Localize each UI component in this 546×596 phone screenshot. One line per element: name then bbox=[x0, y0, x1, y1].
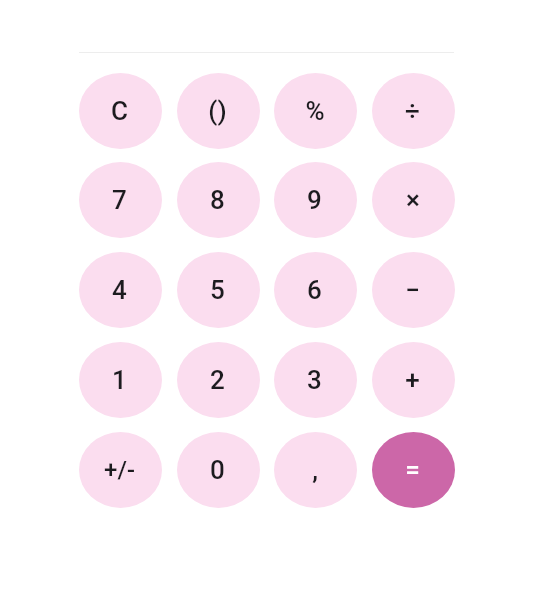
button[interactable]: Equals bbox=[372, 432, 455, 508]
staticText: 4 bbox=[112, 275, 127, 305]
staticText: +/- bbox=[104, 456, 135, 484]
button[interactable]: 3 bbox=[274, 342, 357, 418]
staticText: 2 bbox=[210, 365, 225, 395]
button[interactable]: Clear bbox=[79, 73, 162, 149]
button[interactable]: 6 bbox=[274, 252, 357, 328]
staticText: 3 bbox=[307, 365, 322, 395]
button[interactable]: Toggle sign bbox=[79, 432, 162, 508]
button[interactable]: Multiply bbox=[372, 162, 455, 238]
staticText: × bbox=[406, 185, 420, 215]
button[interactable]: 7 bbox=[79, 162, 162, 238]
button[interactable]: 8 bbox=[177, 162, 260, 238]
button[interactable]: Add bbox=[372, 342, 455, 418]
staticText: , bbox=[312, 455, 318, 485]
button[interactable]: Parentheses bbox=[177, 73, 260, 149]
button[interactable]: Subtract bbox=[372, 252, 455, 328]
staticText: 5 bbox=[210, 275, 225, 305]
button[interactable]: Decimal separator bbox=[274, 432, 357, 508]
staticText: 6 bbox=[307, 275, 322, 305]
button[interactable]: 9 bbox=[274, 162, 357, 238]
staticText: () bbox=[208, 96, 227, 126]
button[interactable]: 5 bbox=[177, 252, 260, 328]
staticText: 0 bbox=[210, 455, 225, 485]
staticText: ÷ bbox=[405, 96, 420, 126]
button[interactable]: Divide bbox=[372, 73, 455, 149]
button[interactable]: 1 bbox=[79, 342, 162, 418]
staticText: − bbox=[405, 275, 420, 305]
staticText: 7 bbox=[112, 185, 127, 215]
staticText: = bbox=[405, 455, 420, 485]
staticText: + bbox=[405, 365, 420, 395]
staticText: 1 bbox=[112, 365, 127, 395]
staticText: C bbox=[111, 96, 128, 126]
button[interactable]: 2 bbox=[177, 342, 260, 418]
staticText: 8 bbox=[210, 185, 225, 215]
staticText: 9 bbox=[307, 185, 322, 215]
button[interactable]: Percent bbox=[274, 73, 357, 149]
button[interactable]: 0 bbox=[177, 432, 260, 508]
staticText: % bbox=[305, 96, 325, 126]
button[interactable]: 4 bbox=[79, 252, 162, 328]
